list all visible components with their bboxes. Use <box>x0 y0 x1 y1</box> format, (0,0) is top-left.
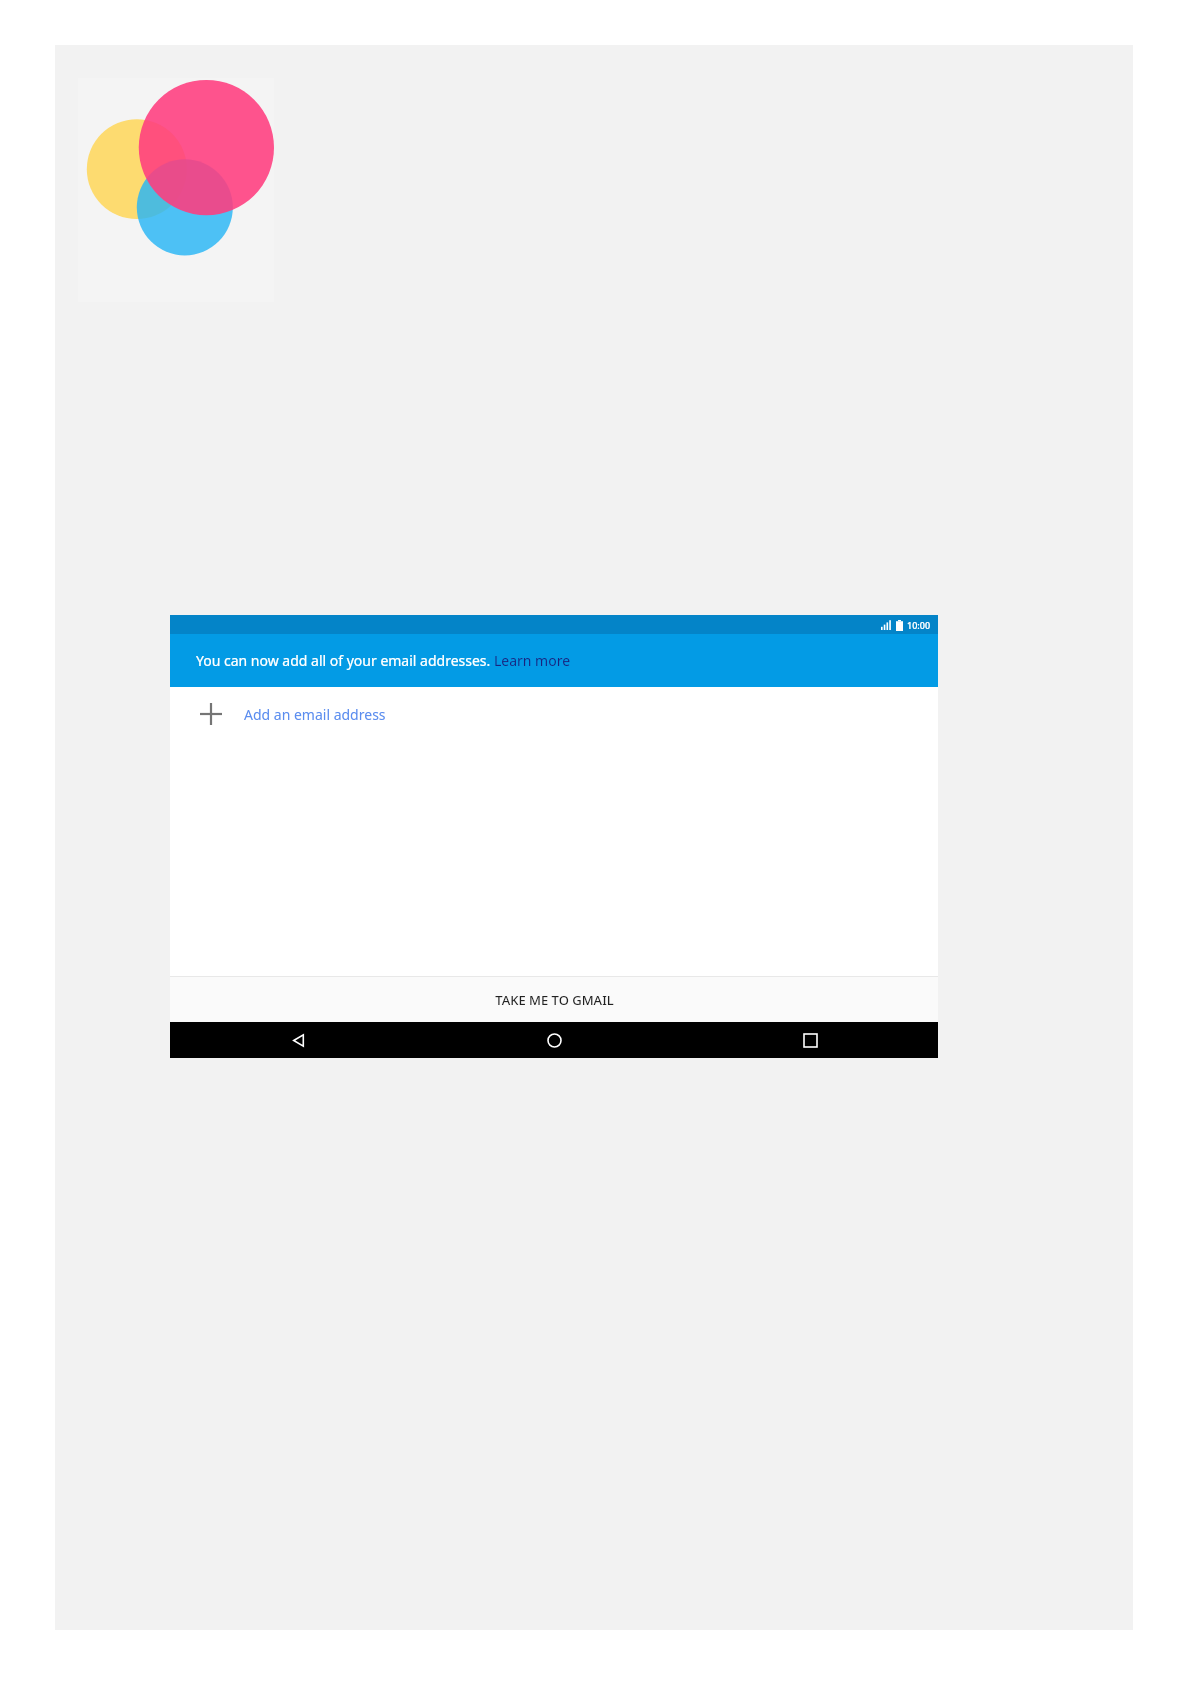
staticText: 10:00 <box>907 619 931 631</box>
button[interactable]: Recent apps <box>682 1022 938 1058</box>
staticText: TAKE ME TO GMAIL <box>495 991 614 1009</box>
button[interactable]: Home <box>426 1022 682 1058</box>
staticText: You can now add all of your email addres… <box>196 651 571 670</box>
button[interactable]: You can now add all of your email addres… <box>170 634 938 687</box>
button[interactable]: Add an email address <box>170 687 938 741</box>
button[interactable]: TAKE ME TO GMAIL <box>170 977 938 1022</box>
button[interactable]: Back <box>170 1022 426 1058</box>
staticText: Add an email address <box>244 705 386 724</box>
